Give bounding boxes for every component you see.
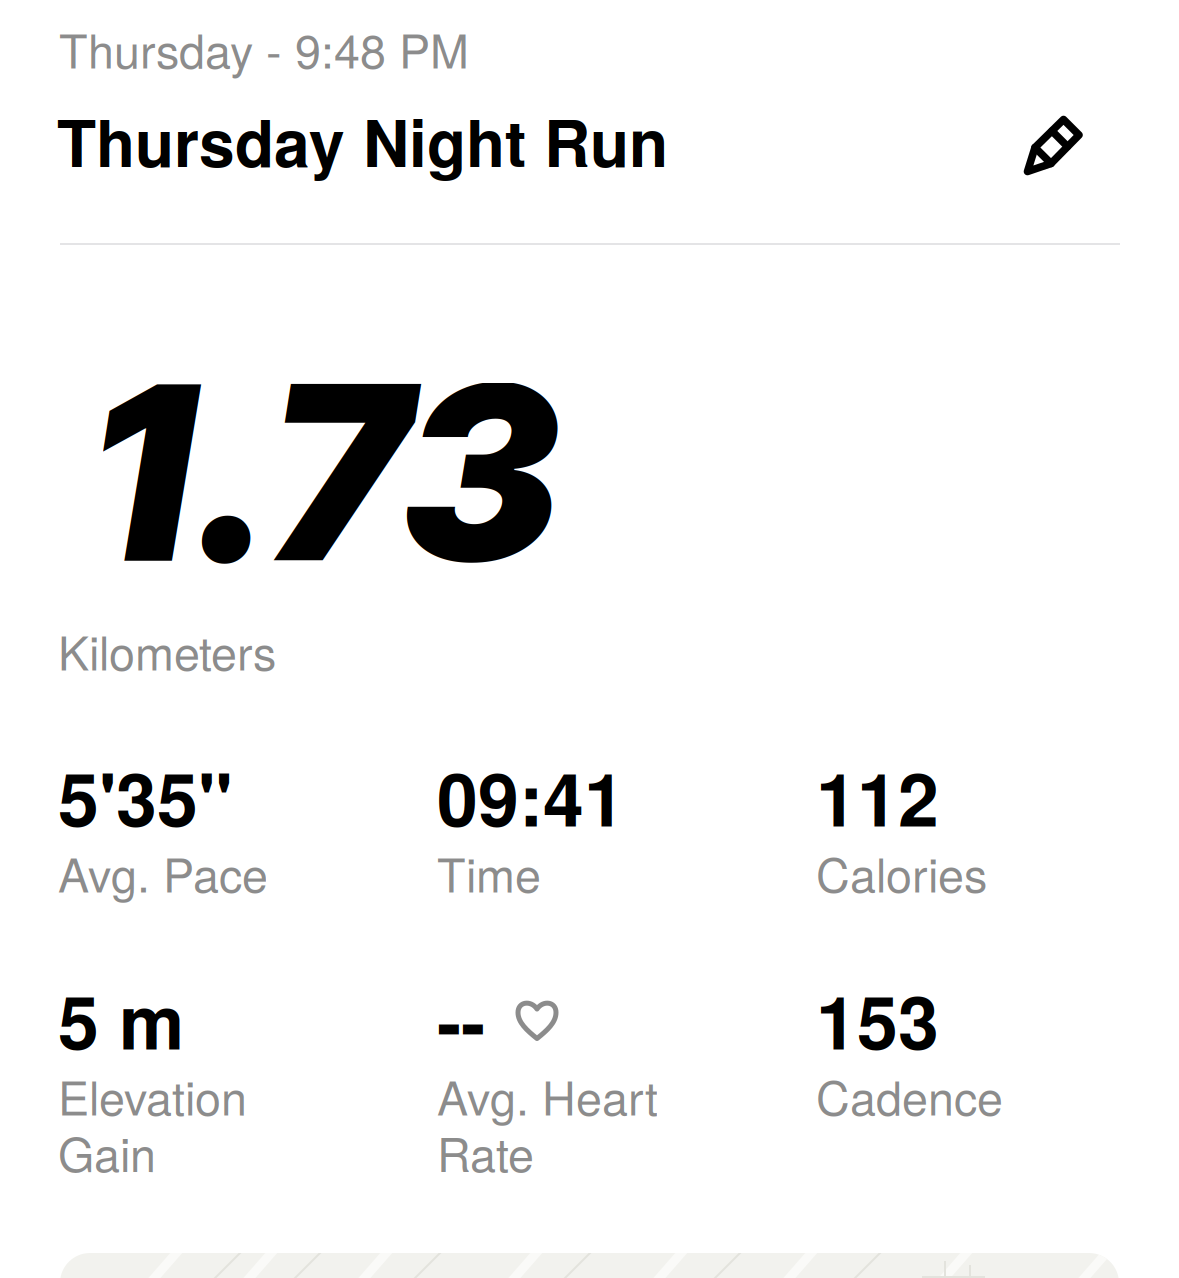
staticText: Avg. Pace	[58, 844, 268, 901]
staticText: Calories	[816, 844, 987, 901]
staticText: --	[437, 967, 485, 1072]
staticText: Elevation Gain	[58, 1067, 247, 1180]
staticText: Avg. Heart Rate	[437, 1067, 658, 1180]
staticText: 5 m	[58, 967, 184, 1072]
staticText: Thursday Night Run	[57, 95, 668, 187]
staticText: Time	[437, 844, 541, 901]
staticText: 5'35"	[58, 744, 233, 849]
staticText: 112	[816, 744, 939, 849]
staticText: 1.73	[88, 327, 560, 619]
staticText: Thursday - 9:48 PM	[59, 15, 469, 82]
staticText: Cadence	[816, 1067, 1003, 1124]
staticText: Kilometers	[58, 617, 276, 684]
button[interactable]: Edit	[1022, 114, 1085, 177]
staticText: 153	[816, 967, 939, 1072]
staticText: 09:41	[437, 744, 625, 849]
